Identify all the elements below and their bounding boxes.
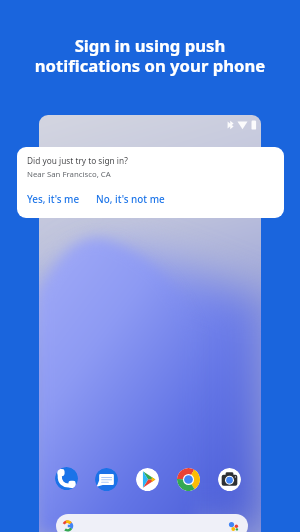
button[interactable]: Chrome xyxy=(177,468,200,491)
button[interactable]: Yes, it's me xyxy=(27,192,80,205)
staticText: Sign in using push notifications on your… xyxy=(6,34,294,77)
button[interactable]: No, it's not me xyxy=(96,192,165,205)
button[interactable]: Play Store xyxy=(136,468,159,491)
staticText: Yes, it's me xyxy=(27,192,80,205)
button[interactable]: Messages xyxy=(95,468,118,491)
staticText: No, it's not me xyxy=(96,192,165,205)
staticText: Did you just try to sign in? xyxy=(27,155,128,166)
button[interactable]: Camera xyxy=(218,468,241,491)
staticText: Near San Francisco, CA xyxy=(27,169,111,180)
button[interactable]: Phone xyxy=(55,467,78,490)
button[interactable]: Search xyxy=(56,514,248,532)
